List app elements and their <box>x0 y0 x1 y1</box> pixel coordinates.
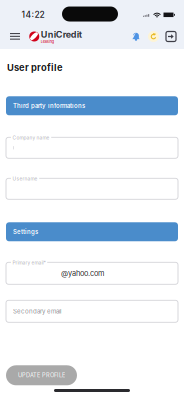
button[interactable]: Menu <box>0 25 29 48</box>
staticText: UniCredit <box>41 29 82 40</box>
staticText: Leasing <box>41 39 54 44</box>
staticText: Third party informations <box>13 102 85 109</box>
staticText: Username <box>13 176 38 182</box>
staticText: Settings <box>13 228 38 235</box>
staticText: Company name <box>13 135 50 141</box>
staticText: Secondary email <box>13 308 61 315</box>
button[interactable]: Settings <box>6 222 178 241</box>
staticText: UPDATE PROFILE <box>18 372 65 379</box>
staticText: User profile <box>7 62 63 73</box>
button[interactable]: Log out <box>166 29 176 43</box>
staticText: Primary email* <box>13 260 46 266</box>
button[interactable]: Account <box>148 29 159 44</box>
staticText: @yahoo.com <box>61 269 104 278</box>
button[interactable]: UPDATE PROFILE <box>6 365 77 385</box>
staticText: 14:22 <box>21 9 44 20</box>
button[interactable]: Third party informations <box>6 96 178 115</box>
button[interactable]: Notifications <box>131 29 141 44</box>
